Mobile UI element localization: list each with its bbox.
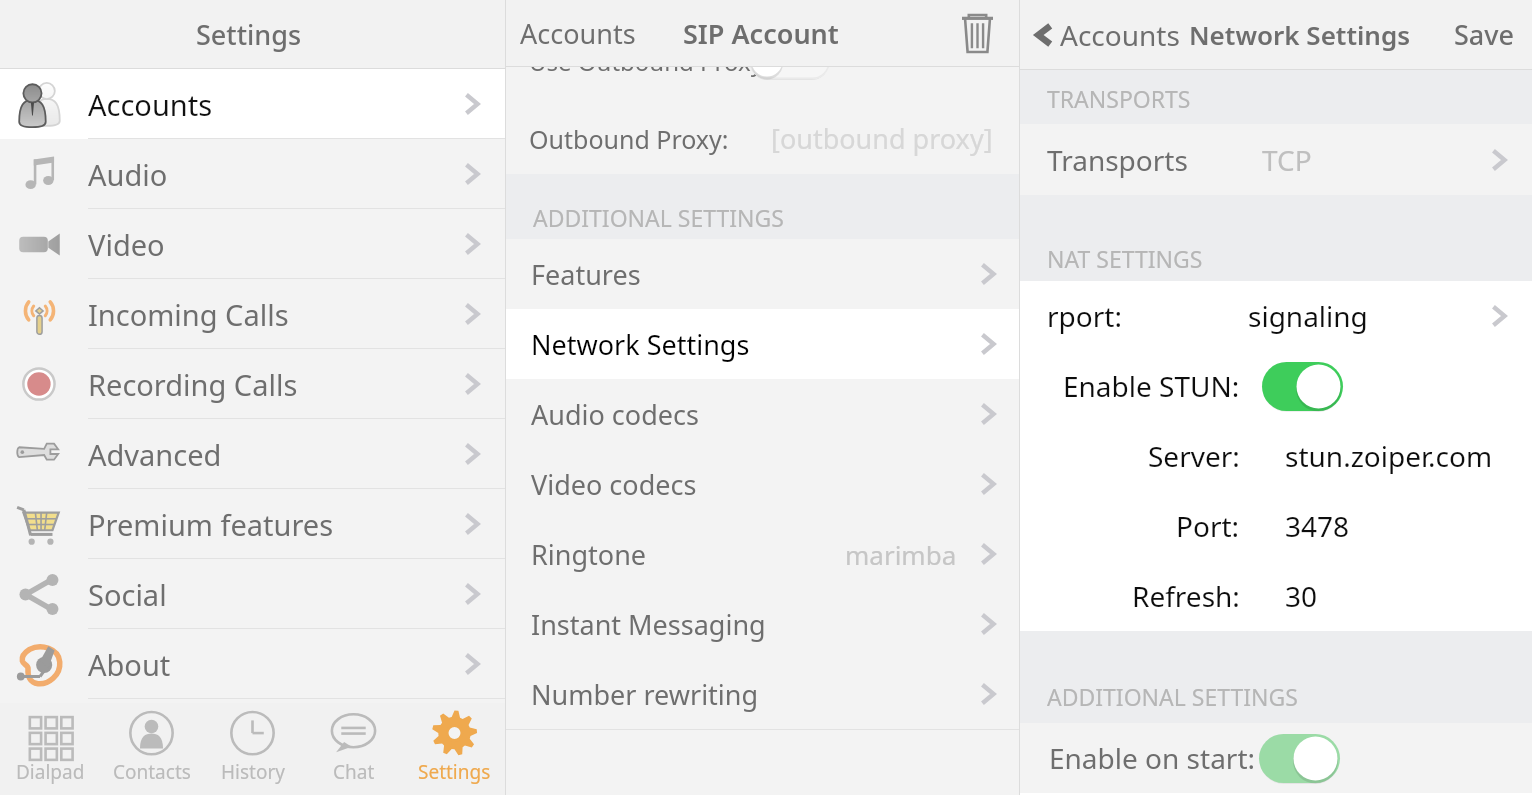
staticText: Audio codecs	[531, 396, 699, 433]
button[interactable]: Delete account	[954, 10, 1000, 56]
button[interactable]: Premium features	[0, 489, 505, 559]
button[interactable]: Network Settings	[506, 309, 1019, 379]
button[interactable]: Instant Messaging	[506, 589, 1019, 659]
staticText: signaling	[1248, 297, 1368, 335]
staticText: 3478	[1285, 507, 1350, 545]
staticText: Premium features	[88, 505, 334, 544]
staticText: TCP	[1262, 141, 1312, 179]
staticText: 30	[1285, 577, 1318, 615]
button[interactable]: Number rewriting	[506, 659, 1019, 729]
staticText: Outbound Proxy:	[529, 122, 729, 156]
staticText: rport:	[1047, 297, 1122, 335]
button[interactable]: Audio codecs	[506, 379, 1019, 449]
staticText: Accounts	[520, 15, 636, 52]
button[interactable]: Chat	[303, 703, 404, 795]
staticText: Use Outbound Proxy:	[529, 67, 770, 78]
staticText: stun.zoiper.com	[1285, 437, 1493, 475]
staticText: ADDITIONAL SETTINGS	[1047, 681, 1298, 712]
staticText: ADDITIONAL SETTINGS	[533, 202, 784, 233]
button[interactable]: Video codecs	[506, 449, 1019, 519]
staticText: Enable STUN:	[1063, 367, 1240, 405]
button[interactable]: Audio	[0, 139, 505, 209]
button[interactable]: rport:	[1020, 281, 1532, 351]
button[interactable]: Recording Calls	[0, 349, 505, 419]
button[interactable]: Toggle	[1259, 734, 1340, 783]
button[interactable]: Incoming Calls	[0, 279, 505, 349]
staticText: Ringtone	[531, 536, 647, 573]
staticText: Number rewriting	[531, 676, 759, 713]
button[interactable]: History	[202, 703, 303, 795]
button[interactable]: Transports	[1020, 124, 1532, 195]
staticText: Audio	[88, 155, 168, 194]
staticText: Video	[88, 225, 165, 264]
staticText: Contacts	[113, 759, 191, 785]
staticText: Recording Calls	[88, 365, 298, 404]
staticText: Instant Messaging	[531, 606, 766, 643]
button[interactable]: Toggle	[749, 67, 830, 79]
staticText: Chat	[333, 759, 375, 785]
button[interactable]: Ringtone	[506, 519, 1019, 589]
staticText: Features	[531, 256, 641, 293]
staticText: Port:	[1176, 507, 1240, 545]
button[interactable]: Contacts	[101, 703, 202, 795]
staticText: Transports	[1047, 141, 1188, 179]
staticText: TRANSPORTS	[1047, 83, 1191, 114]
staticText: Save	[1454, 16, 1515, 53]
staticText: Server:	[1148, 437, 1240, 475]
staticText: Dialpad	[16, 759, 85, 785]
staticText: Accounts	[1060, 16, 1180, 54]
button[interactable]: Save	[1454, 16, 1515, 53]
staticText: Network Settings	[1189, 17, 1411, 52]
button[interactable]: About	[0, 629, 505, 699]
button[interactable]: Dialpad	[0, 703, 101, 795]
staticText: Enable on start:	[1049, 739, 1256, 777]
staticText: NAT SETTINGS	[1047, 243, 1203, 274]
staticText: [outbound proxy]	[771, 120, 993, 157]
button[interactable]: Social	[0, 559, 505, 629]
staticText: Settings	[418, 759, 491, 785]
button[interactable]: Back to Accounts	[1031, 16, 1180, 54]
staticText: Accounts	[88, 85, 213, 124]
button[interactable]: Accounts	[0, 69, 505, 139]
staticText: Social	[88, 575, 167, 614]
button[interactable]: Video	[0, 209, 505, 279]
staticText: Settings	[196, 16, 302, 53]
staticText: Incoming Calls	[88, 295, 289, 334]
button[interactable]: Advanced	[0, 419, 505, 489]
button[interactable]: Toggle	[1262, 362, 1343, 411]
staticText: History	[221, 759, 285, 785]
button[interactable]: Settings	[404, 703, 505, 795]
staticText: SIP Account	[683, 15, 839, 52]
staticText: marimba	[845, 537, 957, 572]
button[interactable]: Features	[506, 239, 1019, 309]
staticText: Network Settings	[531, 326, 750, 363]
staticText: About	[88, 645, 171, 684]
button[interactable]: Accounts	[516, 15, 640, 52]
staticText: Advanced	[88, 435, 222, 474]
staticText: Video codecs	[531, 466, 697, 503]
staticText: Refresh:	[1132, 577, 1240, 615]
